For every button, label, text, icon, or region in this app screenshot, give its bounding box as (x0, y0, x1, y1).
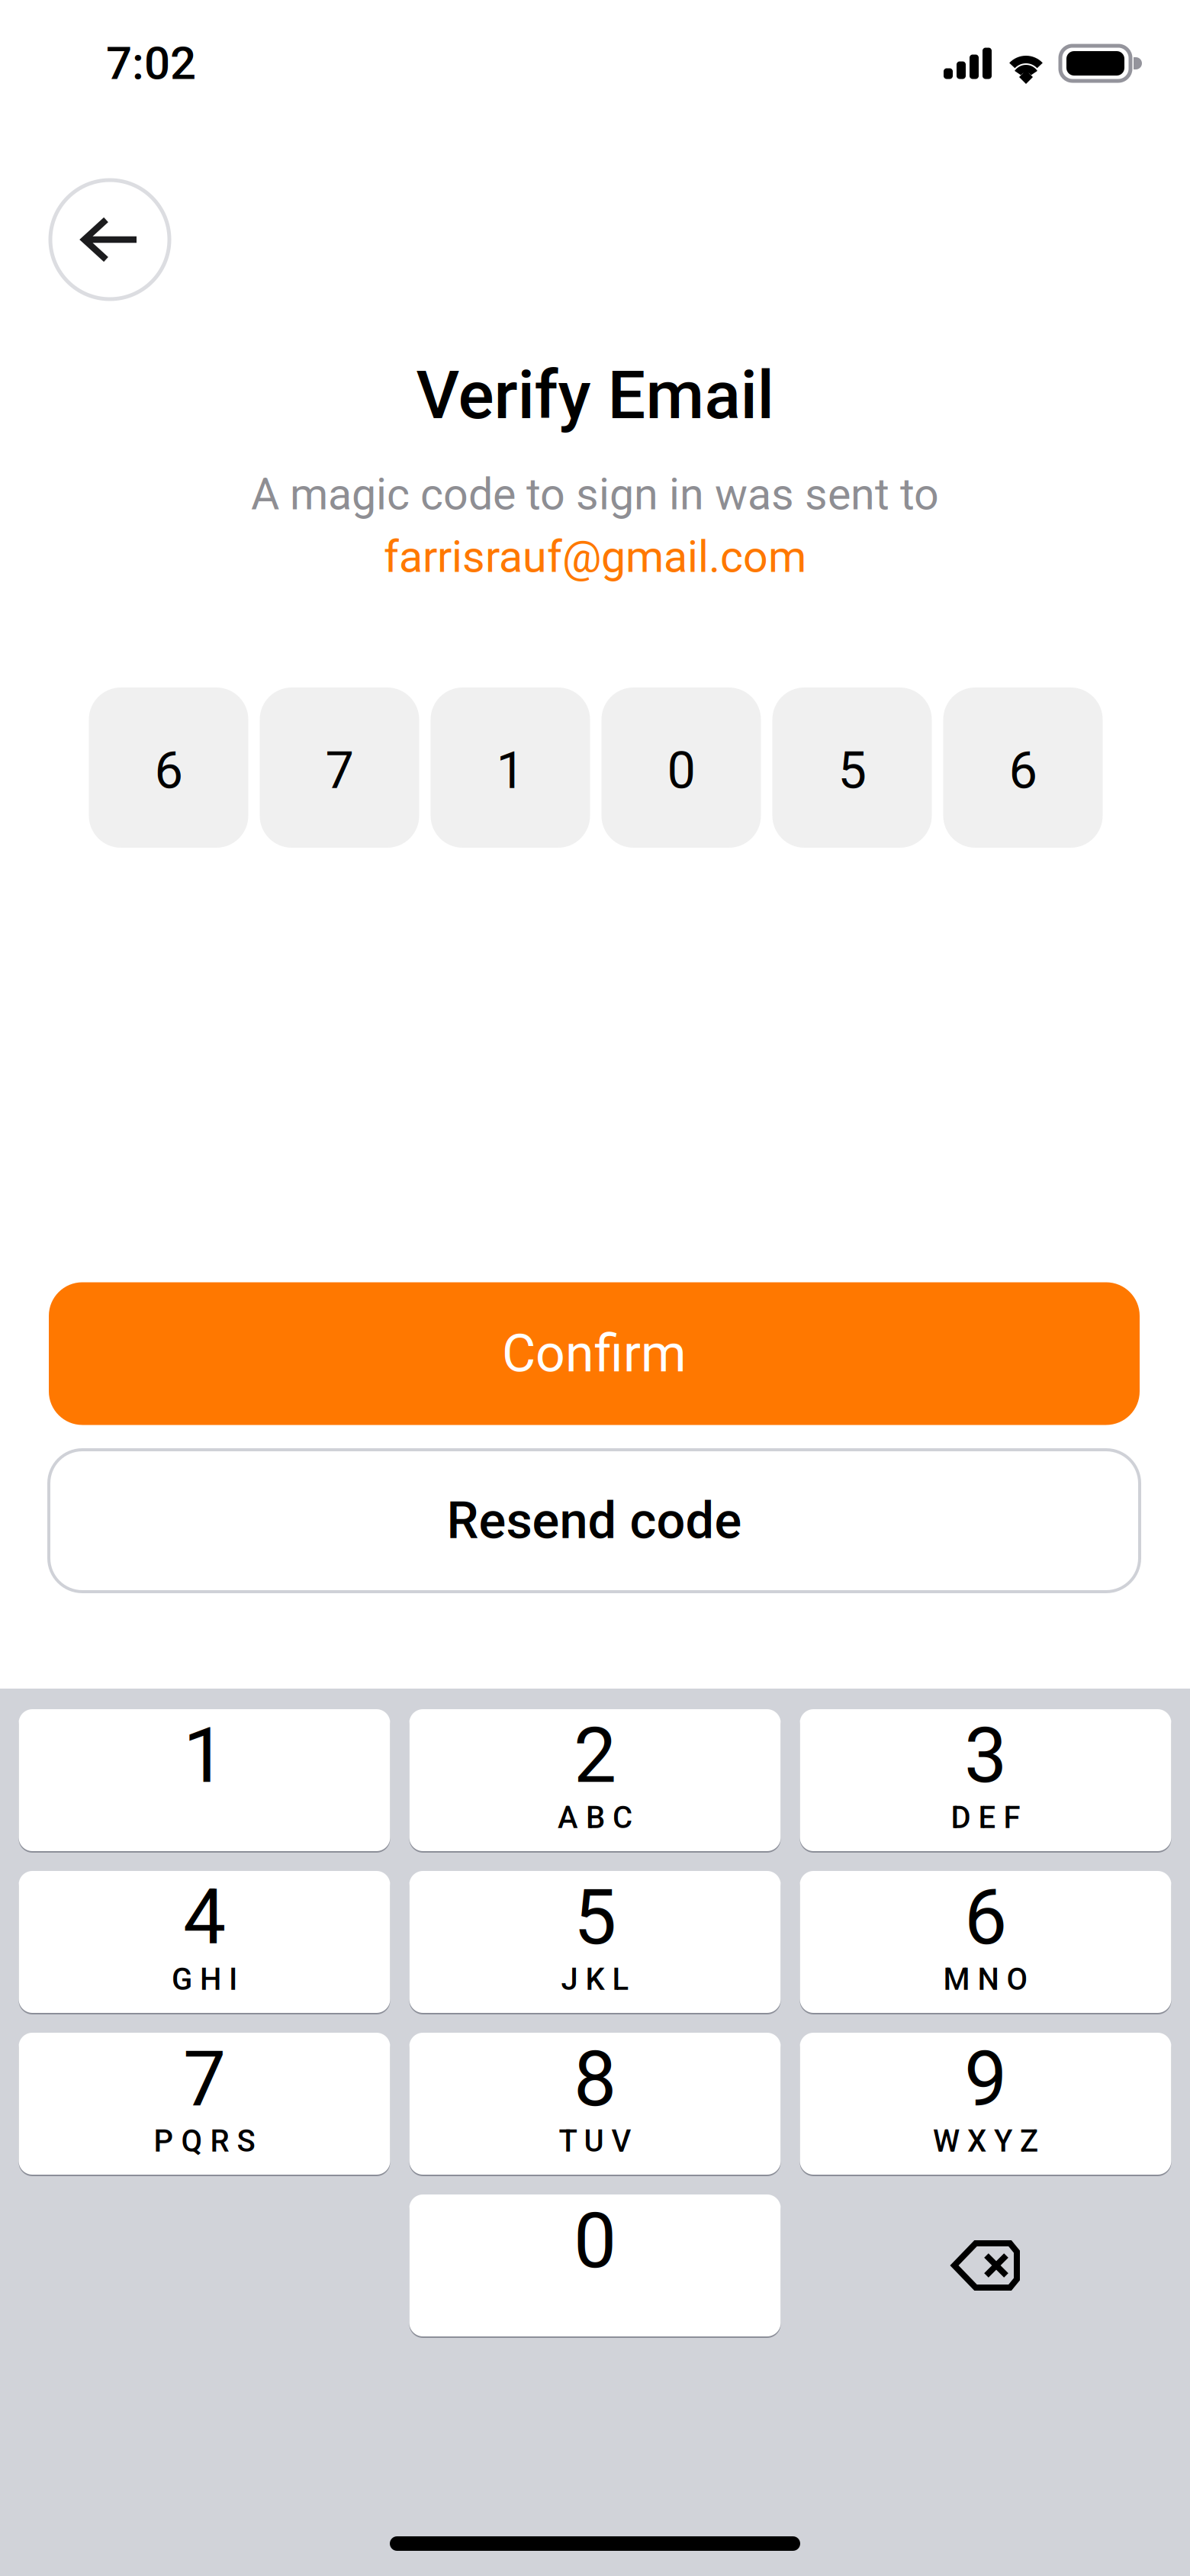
staticText: 2 (574, 1711, 616, 1800)
button[interactable]: Confirm (49, 1282, 1140, 1425)
staticText: D E F (951, 1800, 1020, 1835)
staticText: 1 (183, 1711, 226, 1800)
staticText: 6 (154, 741, 183, 800)
staticText: W X Y Z (933, 2123, 1038, 2159)
staticText: 4 (183, 1873, 226, 1962)
staticText: J K L (561, 1961, 629, 1997)
staticText: 8 (574, 2035, 616, 2124)
staticText: Resend code (447, 1491, 742, 1550)
button[interactable]: 9 (800, 2033, 1171, 2175)
button[interactable]: 2 (409, 1709, 781, 1851)
staticText: 5 (574, 1873, 616, 1962)
button[interactable]: Back (50, 180, 169, 299)
button[interactable]: 0 (601, 687, 761, 848)
button[interactable]: 6 (943, 687, 1103, 848)
staticText: 0 (667, 741, 695, 800)
staticText: 6 (964, 1873, 1007, 1962)
staticText: M N O (943, 1961, 1028, 1997)
button[interactable]: 4 (19, 1871, 390, 2013)
staticText: P Q R S (154, 2123, 255, 2159)
staticText: 1 (496, 741, 524, 800)
button[interactable]: 6 (800, 1871, 1171, 2013)
button[interactable]: 5 (409, 1871, 781, 2013)
staticText: farrisrauf@gmail.com (384, 531, 806, 583)
staticText: 5 (838, 741, 866, 800)
staticText: 7 (325, 741, 354, 800)
staticText: A B C (558, 1800, 632, 1835)
staticText: 3 (964, 1711, 1007, 1800)
button[interactable]: 7 (260, 687, 419, 848)
staticText: 6 (1009, 741, 1037, 800)
button[interactable]: Delete (800, 2194, 1171, 2336)
button[interactable]: 0 (409, 2194, 781, 2336)
staticText: Verify Email (416, 356, 774, 435)
staticText: Confirm (502, 1323, 687, 1384)
button[interactable]: 7 (19, 2033, 390, 2175)
staticText: 9 (964, 2035, 1007, 2124)
button[interactable]: 3 (800, 1709, 1171, 1851)
button[interactable]: 1 (431, 687, 590, 848)
staticText: 7:02 (106, 36, 196, 90)
staticText: 0 (574, 2196, 616, 2286)
staticText: T U V (559, 2123, 631, 2159)
button[interactable]: 5 (772, 687, 932, 848)
staticText: 7 (183, 2035, 226, 2124)
button[interactable]: 1 (19, 1709, 390, 1851)
staticText: A magic code to sign in was sent to (251, 469, 939, 520)
button[interactable]: 6 (89, 687, 248, 848)
button[interactable]: 8 (409, 2033, 781, 2175)
button[interactable]: Resend code (49, 1450, 1140, 1592)
staticText: G H I (172, 1961, 237, 1997)
